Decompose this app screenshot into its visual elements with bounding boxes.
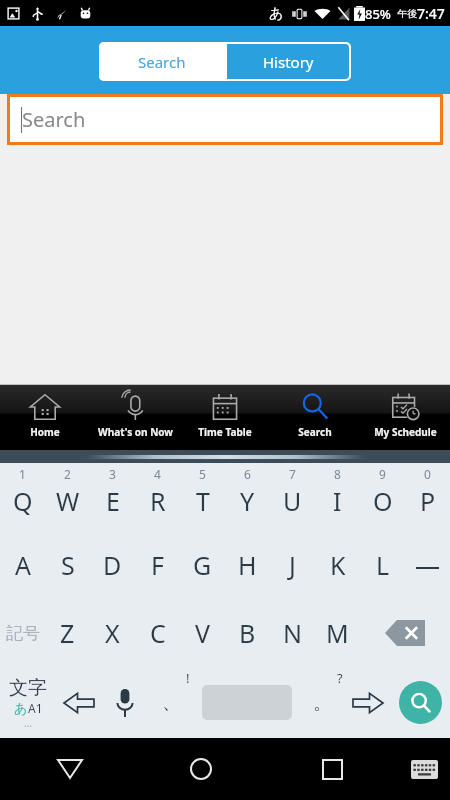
button[interactable]: J [270,531,315,599]
button[interactable]: Home [176,744,226,794]
staticText: T [196,484,210,518]
button[interactable]: Home [0,385,90,450]
staticText: 。 [313,691,332,715]
staticText: ! [186,669,190,687]
staticText: 文字 [9,676,47,700]
button[interactable]: F [135,531,180,599]
staticText: Search [138,52,186,72]
staticText: K [330,548,346,582]
button[interactable]: ! [148,667,194,738]
staticText: N [283,616,303,650]
button[interactable]: — [405,531,450,599]
staticText: 8 [334,466,341,482]
button[interactable]: Hide keyboard [45,744,95,794]
button[interactable]: Search [391,667,450,738]
staticText: W [56,484,80,518]
staticText: — [415,548,441,582]
button[interactable]: 7 [270,463,315,531]
button[interactable]: Voice input [102,667,148,738]
button[interactable]: X [90,599,135,667]
button[interactable]: A [0,531,45,599]
button[interactable]: C [135,599,180,667]
staticText: 0 [424,466,431,482]
staticText: … [24,716,32,730]
button[interactable]: Search [270,385,360,450]
button[interactable]: Search [10,97,440,142]
staticText: 午後 [397,7,417,20]
button[interactable]: 文字 [0,667,56,738]
staticText: ? [337,669,343,687]
button[interactable]: History [227,44,349,79]
button[interactable]: B [225,599,270,667]
button[interactable]: 1 [0,463,45,531]
button[interactable]: Cursor left [56,667,102,738]
staticText: Z [60,616,75,650]
staticText: Y [240,484,255,518]
button[interactable]: 記号 [0,599,45,667]
button[interactable]: Switch keyboard [402,747,446,791]
button[interactable]: Search [99,42,225,81]
button[interactable]: ? [299,667,345,738]
button[interactable]: 9 [360,463,405,531]
staticText: Search [22,106,86,133]
staticText: 1 [19,466,26,482]
staticText: C [150,616,166,650]
button[interactable]: N [270,599,315,667]
button[interactable]: What's on Now [90,385,180,450]
staticText: E [106,484,120,518]
button[interactable]: 0 [405,463,450,531]
staticText: I [333,484,342,518]
button[interactable]: L [360,531,405,599]
staticText: D [103,548,122,582]
button[interactable]: Recent apps [307,744,357,794]
staticText: A [15,548,31,582]
button[interactable]: V [180,599,225,667]
staticText: 記号 [6,623,40,644]
staticText: B [239,616,256,650]
staticText: 7:47 [417,4,445,23]
staticText: H [238,548,257,582]
button[interactable]: 6 [225,463,270,531]
button[interactable]: Backspace [360,599,450,667]
button[interactable]: 8 [315,463,360,531]
staticText: Time Table [198,425,252,439]
staticText: あ [269,5,284,23]
staticText: あ [14,700,28,716]
staticText: O [373,484,393,518]
staticText: My Schedule [374,425,437,439]
staticText: R [150,484,166,518]
staticText: P [420,484,436,518]
button[interactable]: Time Table [180,385,270,450]
staticText: Home [30,425,60,439]
staticText: J [289,548,296,582]
staticText: History [263,52,314,72]
button[interactable]: D [90,531,135,599]
staticText: U [283,484,302,518]
button[interactable]: M [315,599,360,667]
staticText: 3 [109,466,116,482]
button[interactable]: Cursor right [345,667,391,738]
button[interactable]: Z [45,599,90,667]
staticText: V [195,616,211,650]
staticText: 2 [64,466,71,482]
button[interactable]: 3 [90,463,135,531]
button[interactable]: G [180,531,225,599]
staticText: 9 [379,466,386,482]
staticText: X [105,616,120,650]
button[interactable]: My Schedule [360,385,450,450]
staticText: S [61,548,75,582]
button[interactable]: Space [194,667,299,738]
staticText: 7 [289,466,296,482]
button[interactable]: 5 [180,463,225,531]
staticText: What's on Now [98,425,173,439]
button[interactable]: S [45,531,90,599]
staticText: A1 [28,700,43,716]
button[interactable]: 2 [45,463,90,531]
staticText: L [376,548,390,582]
staticText: 6 [244,466,251,482]
staticText: Q [13,484,33,518]
button[interactable]: H [225,531,270,599]
button[interactable]: 4 [135,463,180,531]
button[interactable]: K [315,531,360,599]
staticText: F [151,548,164,582]
